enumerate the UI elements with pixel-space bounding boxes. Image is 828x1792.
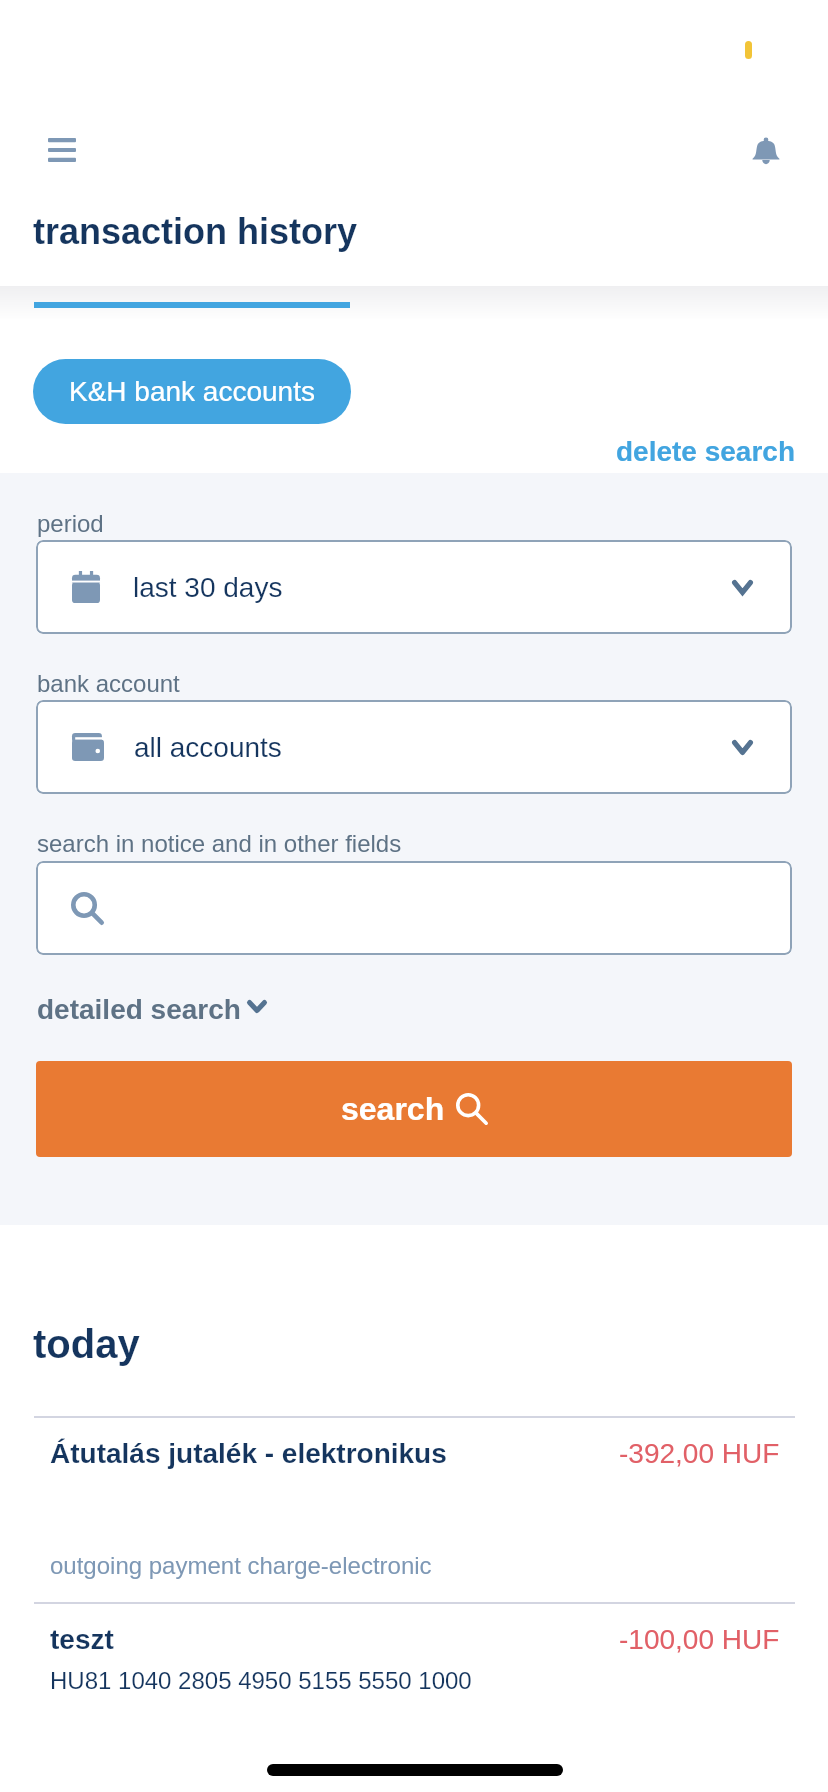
- staticText: search in notice and in other fields: [37, 830, 402, 857]
- button[interactable]: search: [36, 1061, 792, 1157]
- staticText: Átutalás jutalék - elektronikus: [50, 1438, 447, 1469]
- button[interactable]: K&H bank accounts: [33, 359, 351, 424]
- staticText: transaction history: [33, 211, 358, 251]
- staticText: -100,00 HUF: [619, 1624, 780, 1655]
- staticText: today: [33, 1322, 140, 1367]
- staticText: detailed search: [37, 994, 241, 1025]
- staticText: delete search: [616, 436, 795, 467]
- button[interactable]: teszt: [0, 1604, 828, 1694]
- staticText: outgoing payment charge-electronic: [50, 1552, 432, 1579]
- button[interactable]: last 30 days: [36, 540, 792, 634]
- button[interactable]: delete search: [610, 432, 801, 471]
- staticText: last 30 days: [133, 572, 283, 603]
- staticText: HU81 1040 2805 4950 5155 5550 1000: [50, 1667, 472, 1694]
- staticText: period: [37, 510, 104, 537]
- button[interactable]: Átutalás jutalék - elektronikus: [0, 1418, 828, 1602]
- staticText: -392,00 HUF: [619, 1438, 780, 1469]
- staticText: search: [341, 1091, 445, 1127]
- staticText: bank account: [37, 670, 180, 697]
- button[interactable]: Notifications: [738, 122, 794, 178]
- staticText: K&H bank accounts: [69, 376, 315, 407]
- staticText: teszt: [50, 1624, 114, 1655]
- button[interactable]: Menu: [34, 122, 90, 178]
- button[interactable]: [36, 861, 792, 955]
- button[interactable]: all accounts: [36, 700, 792, 794]
- button[interactable]: detailed search: [34, 990, 277, 1033]
- staticText: all accounts: [134, 732, 282, 763]
